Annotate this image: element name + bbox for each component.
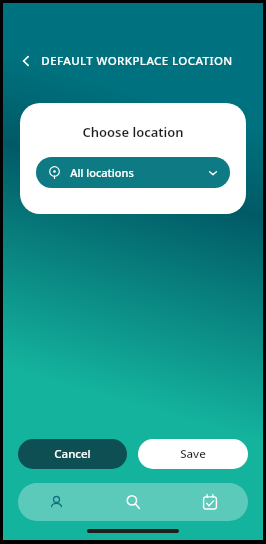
button[interactable]: Save bbox=[138, 439, 248, 469]
button[interactable]: Back bbox=[15, 50, 37, 72]
button[interactable]: Cancel bbox=[18, 439, 127, 469]
staticText: DEFAULT WORKPLACE LOCATION bbox=[41, 53, 233, 69]
staticText: All locations bbox=[70, 165, 134, 180]
button[interactable]: All locations bbox=[36, 157, 230, 188]
staticText: Save bbox=[180, 446, 206, 462]
button[interactable]: Search bbox=[94, 483, 171, 521]
button[interactable]: Schedule bbox=[171, 483, 248, 521]
staticText: Cancel bbox=[54, 446, 91, 462]
staticText: Choose location bbox=[82, 123, 184, 141]
button[interactable]: Profile bbox=[18, 483, 94, 521]
